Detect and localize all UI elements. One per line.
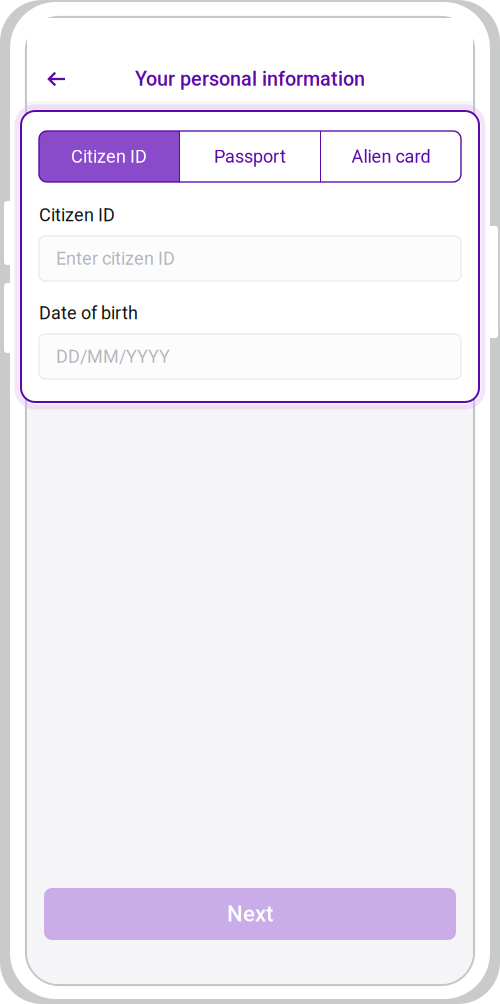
staticText: Citizen ID [71, 146, 147, 167]
staticText: Next [227, 901, 273, 927]
staticText: DD/MM/YYYY [56, 346, 170, 367]
button[interactable]: Passport [180, 131, 320, 182]
button[interactable]: Back [40, 62, 74, 96]
staticText: Enter citizen ID [56, 248, 175, 269]
button[interactable]: DD/MM/YYYY [39, 334, 461, 379]
staticText: Alien card [351, 146, 430, 167]
staticText: Date of birth [39, 302, 138, 324]
button[interactable]: Enter citizen ID [39, 236, 461, 281]
button[interactable]: Alien card [321, 131, 461, 182]
staticText: Citizen ID [39, 204, 115, 226]
button[interactable]: Next [44, 888, 456, 940]
staticText: Passport [214, 146, 286, 167]
staticText: Your personal information [135, 67, 365, 90]
button[interactable]: Citizen ID [39, 131, 179, 182]
